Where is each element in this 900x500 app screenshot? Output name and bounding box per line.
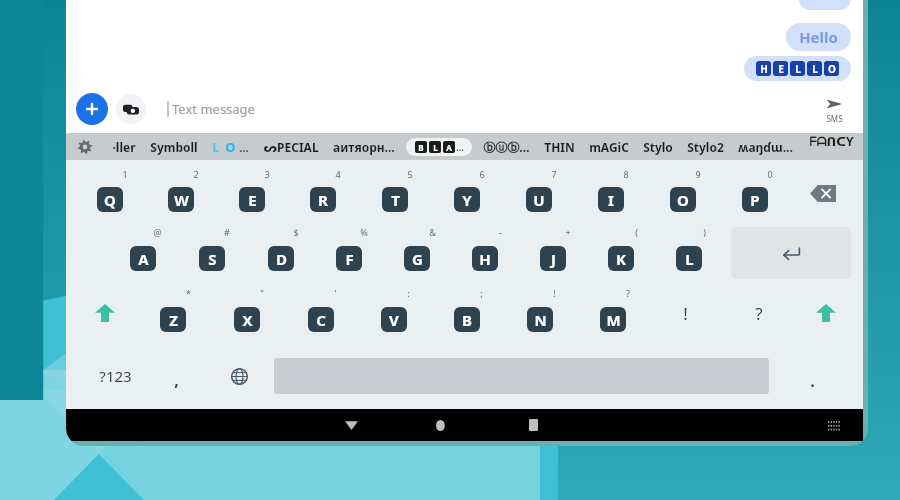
button[interactable]: +: [519, 222, 587, 283]
button[interactable]: !: [503, 283, 576, 343]
staticText: O: [225, 138, 236, 156]
staticText: B: [462, 310, 472, 330]
button[interactable]: Camera: [116, 94, 146, 124]
button[interactable]: ": [210, 283, 284, 343]
button[interactable]: THIN: [537, 139, 582, 155]
button[interactable]: @: [108, 222, 177, 283]
staticText: ": [260, 287, 264, 299]
button[interactable]: 4: [287, 164, 359, 222]
button[interactable]: ᔕPECIAL: [256, 139, 326, 155]
button[interactable]: Text message: [155, 92, 853, 126]
button[interactable]: аитяорн…: [326, 139, 402, 155]
staticText: ): [703, 226, 706, 238]
staticText: 2: [193, 168, 199, 180]
staticText: 9: [695, 168, 701, 180]
button[interactable]: 9: [647, 164, 719, 222]
button[interactable]: %: [315, 222, 383, 283]
staticText: P: [750, 190, 760, 210]
button[interactable]: Hello: [786, 23, 851, 51]
button[interactable]: Enter: [731, 227, 851, 279]
button[interactable]: mAGiC: [582, 139, 636, 155]
staticText: Q: [104, 190, 116, 210]
button[interactable]: Settings: [75, 137, 95, 157]
button[interactable]: !: [649, 283, 722, 343]
button[interactable]: Stylo2: [680, 139, 731, 155]
button[interactable]: $: [246, 222, 315, 283]
button[interactable]: Backspace: [791, 164, 855, 222]
staticText: *: [186, 287, 191, 299]
staticText: .: [810, 370, 815, 392]
staticText: THIN: [544, 139, 575, 155]
button[interactable]: 0: [719, 164, 791, 222]
button[interactable]: :: [357, 283, 430, 343]
staticText: N: [534, 310, 547, 330]
button[interactable]: ⓑⓤⓑ…: [476, 139, 537, 155]
staticText: ;: [480, 287, 483, 299]
button[interactable]: ᖴᗩᑎᑕƳ …: [800, 133, 863, 160]
button[interactable]: Change language: [206, 343, 272, 409]
button[interactable]: ?: [576, 283, 649, 343]
button[interactable]: Shift right: [795, 283, 857, 343]
staticText: ⓑⓤⓑ…: [483, 139, 530, 155]
button[interactable]: .: [771, 343, 853, 409]
button[interactable]: Symboll: [143, 139, 205, 155]
button[interactable]: ): [655, 222, 723, 283]
button[interactable]: 7: [503, 164, 575, 222]
staticText: V: [389, 310, 399, 330]
staticText: Z: [169, 310, 178, 330]
staticText: !: [683, 302, 688, 325]
staticText: ᔕPECIAL: [263, 139, 319, 155]
button[interactable]: Home: [426, 410, 456, 440]
staticText: D: [276, 249, 287, 269]
staticText: C: [316, 310, 326, 330]
staticText: Stylo2: [687, 139, 724, 155]
staticText: G: [412, 249, 423, 269]
button[interactable]: Stylo: [636, 139, 680, 155]
staticText: R: [318, 190, 328, 210]
staticText: :: [407, 287, 410, 299]
button[interactable]: 5: [359, 164, 431, 222]
staticText: 6: [479, 168, 485, 180]
button[interactable]: L: [205, 138, 256, 156]
button[interactable]: #: [177, 222, 246, 283]
staticText: L: [433, 142, 438, 153]
button[interactable]: ,: [146, 343, 206, 409]
button[interactable]: *: [136, 283, 210, 343]
button[interactable]: ?123: [84, 343, 146, 409]
staticText: %: [360, 226, 368, 238]
staticText: mAGiC: [589, 139, 629, 155]
staticText: I: [608, 190, 614, 210]
button[interactable]: ;: [430, 283, 503, 343]
staticText: O: [677, 190, 689, 210]
button[interactable]: 2: [145, 164, 216, 222]
staticText: J: [551, 249, 556, 269]
staticText: 4: [335, 168, 341, 180]
button[interactable]: ·ller: [105, 139, 143, 155]
button[interactable]: 6: [431, 164, 503, 222]
button[interactable]: -: [451, 222, 519, 283]
button[interactable]: Recent apps: [518, 410, 548, 440]
button[interactable]: Add attachment: [76, 93, 108, 125]
button[interactable]: 3: [216, 164, 287, 222]
staticText: Text message: [172, 100, 255, 118]
button[interactable]: Back: [336, 410, 366, 440]
staticText: аитяорн…: [333, 139, 395, 155]
staticText: (: [635, 226, 638, 238]
button[interactable]: B: [406, 138, 472, 156]
staticText: 3: [264, 168, 270, 180]
button[interactable]: 1: [74, 164, 145, 222]
button[interactable]: &: [383, 222, 451, 283]
button[interactable]: H: [744, 56, 851, 81]
button[interactable]: ʍaŋɗɯ…: [731, 139, 800, 155]
button[interactable]: Shift: [74, 283, 136, 343]
staticText: ?: [755, 302, 763, 325]
button[interactable]: Switch keyboard: [819, 410, 849, 440]
button[interactable]: ': [284, 283, 357, 343]
staticText: O: [828, 62, 836, 76]
button[interactable]: 8: [575, 164, 647, 222]
staticText: @: [153, 226, 162, 238]
button[interactable]: (: [587, 222, 655, 283]
button[interactable]: ?: [722, 283, 795, 343]
